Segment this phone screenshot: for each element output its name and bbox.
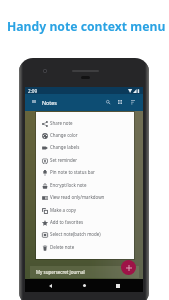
button[interactable]: Home bbox=[78, 279, 91, 292]
staticText: Handy note context menu bbox=[7, 18, 166, 35]
staticText: Make a copy bbox=[50, 207, 76, 213]
button[interactable]: Add to favorites bbox=[36, 216, 134, 228]
staticText: Select note(batch mode) bbox=[50, 231, 101, 237]
staticText: My supersecret journal bbox=[36, 269, 85, 275]
button[interactable]: Pin note to status bar bbox=[36, 166, 134, 178]
staticText: Set reminder bbox=[50, 157, 78, 163]
staticText: Encrypt/lock note bbox=[50, 182, 87, 188]
button[interactable]: My supersecret journal bbox=[30, 266, 139, 278]
button[interactable]: Back bbox=[44, 279, 57, 292]
button[interactable]: Add note bbox=[121, 260, 136, 275]
staticText: Delete note bbox=[50, 244, 75, 250]
button[interactable]: Delete note bbox=[36, 241, 134, 253]
button[interactable]: Sort bbox=[128, 97, 137, 106]
button[interactable]: Recent apps bbox=[111, 279, 124, 292]
staticText: Change color bbox=[50, 132, 78, 138]
button[interactable]: Search bbox=[103, 97, 112, 106]
button[interactable]: Make a copy bbox=[36, 204, 134, 216]
button[interactable]: Change view bbox=[115, 97, 124, 106]
staticText: Share note bbox=[50, 120, 73, 126]
button[interactable]: Set reminder bbox=[36, 154, 134, 166]
button[interactable]: Change labels bbox=[36, 141, 134, 153]
button[interactable]: Encrypt/lock note bbox=[36, 179, 134, 191]
button[interactable]: Open navigation drawer bbox=[29, 97, 38, 106]
staticText: View read only/markdown bbox=[50, 194, 105, 200]
button[interactable]: View read only/markdown bbox=[36, 191, 134, 203]
staticText: Add to favorites bbox=[50, 219, 84, 225]
staticText: 2:09 bbox=[28, 88, 38, 94]
button[interactable]: Change color bbox=[36, 129, 134, 141]
button[interactable]: Share note bbox=[36, 117, 134, 129]
button[interactable]: Select note(batch mode) bbox=[36, 228, 134, 240]
staticText: Notes bbox=[42, 99, 57, 106]
staticText: Change labels bbox=[50, 144, 80, 150]
staticText: Pin note to status bar bbox=[50, 169, 95, 175]
